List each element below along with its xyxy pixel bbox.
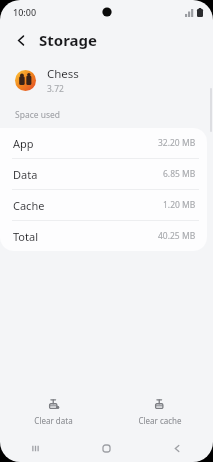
- button[interactable]: Total: [0, 221, 207, 251]
- button[interactable]: App: [0, 128, 207, 159]
- button[interactable]: Home: [71, 434, 142, 462]
- button[interactable]: Cache: [0, 190, 207, 221]
- staticText: 1.20 MB: [163, 199, 196, 211]
- button[interactable]: Clear cache: [106, 388, 213, 434]
- staticText: Storage: [39, 30, 97, 50]
- staticText: Cache: [13, 198, 45, 213]
- staticText: Data: [13, 167, 38, 182]
- button[interactable]: Data: [0, 159, 207, 190]
- staticText: Clear cache: [138, 415, 182, 426]
- staticText: 40.25 MB: [158, 230, 196, 242]
- staticText: Total: [13, 229, 38, 244]
- staticText: Space used: [15, 109, 61, 121]
- staticText: 3.72: [47, 83, 64, 95]
- button[interactable]: Back: [10, 29, 32, 51]
- staticText: 10:00: [13, 6, 37, 18]
- staticText: 32.20 MB: [158, 137, 196, 149]
- staticText: App: [13, 136, 34, 151]
- staticText: Chess: [47, 66, 79, 82]
- button[interactable]: Recent apps: [0, 434, 71, 462]
- staticText: Clear data: [34, 415, 73, 426]
- staticText: 6.85 MB: [163, 168, 196, 180]
- button[interactable]: Clear data: [0, 388, 106, 434]
- button[interactable]: Back: [142, 434, 213, 462]
